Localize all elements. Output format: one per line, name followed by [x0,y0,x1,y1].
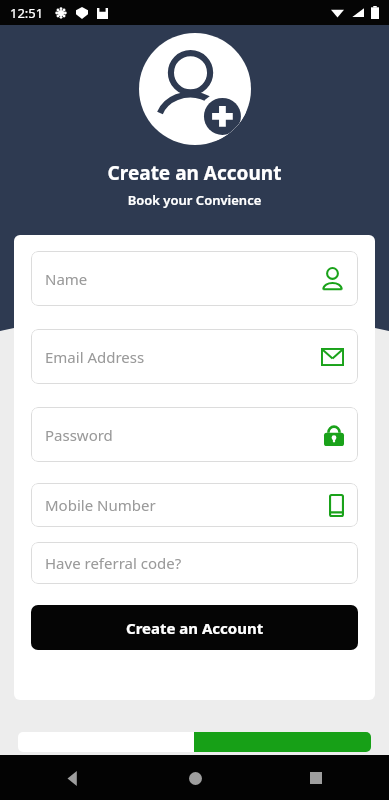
staticText: Password [45,425,324,445]
button[interactable]: Email Address [31,329,358,384]
button[interactable]: Recent apps [301,763,331,793]
button[interactable]: Name [31,251,358,306]
staticText: Create an Account [126,618,264,638]
staticText: 12:51 [10,4,44,22]
staticText: Book your Convience [0,191,389,209]
staticText: Create an Account [0,160,389,186]
staticText: Mobile Number [45,495,329,515]
button[interactable]: Home [180,763,210,793]
button[interactable]: Back [58,763,88,793]
button[interactable]: Create an Account [31,605,358,650]
staticText: Have referral code? [45,553,344,573]
staticText: Name [45,269,321,289]
button[interactable]: Password [31,407,358,462]
staticText: Email Address [45,347,321,367]
button[interactable]: Have referral code? [31,542,358,584]
button[interactable]: Mobile Number [31,483,358,527]
button[interactable] [194,732,371,752]
